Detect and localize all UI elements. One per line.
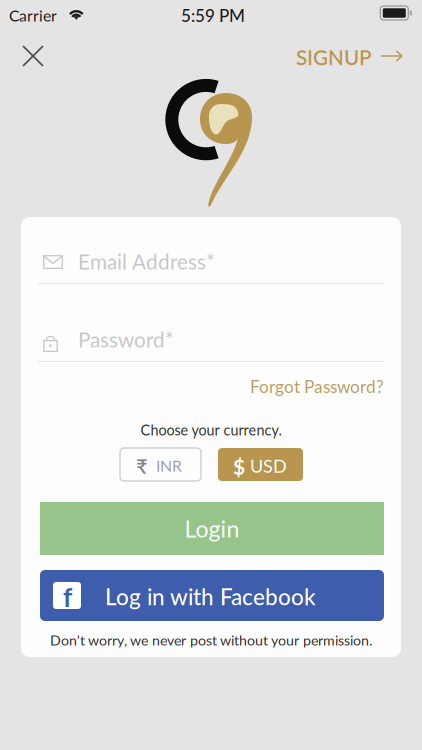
staticText: Choose your currency. xyxy=(140,421,281,439)
staticText: USD xyxy=(250,455,287,477)
staticText: Carrier xyxy=(9,6,57,25)
button[interactable]: SIGNUP xyxy=(296,38,402,74)
button[interactable]: Close xyxy=(11,38,55,74)
staticText: Email Address* xyxy=(78,249,215,274)
button[interactable]: Login xyxy=(40,502,384,555)
staticText: f xyxy=(63,581,72,613)
button[interactable]: ₹ xyxy=(120,448,201,481)
staticText: SIGNUP xyxy=(296,45,372,70)
staticText: ₹ xyxy=(136,454,148,478)
staticText: Don't worry, we never post without your … xyxy=(50,631,372,648)
staticText: Log in with Facebook xyxy=(105,583,316,610)
staticText: INR xyxy=(156,456,182,475)
staticText: Forgot Password? xyxy=(250,376,384,397)
button[interactable]: f xyxy=(40,570,384,621)
staticText: $ xyxy=(233,454,245,479)
button[interactable]: Forgot Password? xyxy=(38,376,384,400)
staticText: 5:59 PM xyxy=(181,5,245,25)
button[interactable]: $ xyxy=(218,448,303,481)
staticText: Password* xyxy=(78,327,174,352)
staticText: Login xyxy=(184,515,239,542)
